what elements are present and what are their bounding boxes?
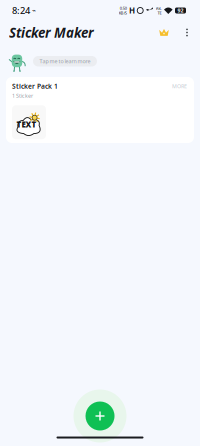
staticText: Sticker Maker (9, 24, 94, 41)
staticText: TEXT (16, 119, 36, 130)
staticText: 1 Sticker (12, 92, 33, 99)
staticText: 92 (177, 7, 183, 14)
staticText: VoL (156, 5, 162, 11)
staticText: TE (158, 10, 162, 15)
staticText: KB/S (119, 10, 127, 15)
staticText: Sticker Pack 1 (12, 82, 58, 91)
staticText: ⌁ (30, 7, 36, 14)
button[interactable]: More options (180, 23, 195, 42)
button[interactable]: Helper mascot (0, 49, 27, 73)
button[interactable]: Premium (153, 22, 180, 42)
staticText: MORE (172, 83, 187, 90)
button[interactable]: Create sticker pack (73, 389, 126, 442)
staticText: Tap me to learn more (39, 58, 90, 65)
staticText: 0.50 (120, 5, 127, 11)
staticText: 8:24 (12, 4, 30, 17)
button[interactable]: Sticker Pack 1 (6, 77, 194, 143)
staticText: H (129, 5, 135, 16)
button[interactable]: Tap me to learn more (27, 49, 97, 66)
